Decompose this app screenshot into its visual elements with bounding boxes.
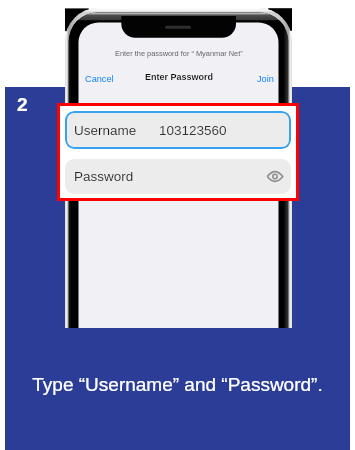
button[interactable]: Show password [267,171,283,182]
staticText: Password [74,169,134,184]
staticText: Enter the password for “ Myanmar Net” [115,49,243,57]
staticText: 2 [17,94,28,115]
staticText: Join [257,74,274,84]
button[interactable]: Username [65,111,291,149]
button[interactable]: Password [65,159,291,194]
staticText: 103123560 [159,123,227,138]
button[interactable]: Join [255,72,276,86]
staticText: Username [74,123,137,138]
staticText: Cancel [85,74,114,84]
staticText: Enter Password [145,72,214,82]
staticText: Type “Username” and “Password”. [32,374,323,395]
button[interactable]: Cancel [83,72,116,86]
